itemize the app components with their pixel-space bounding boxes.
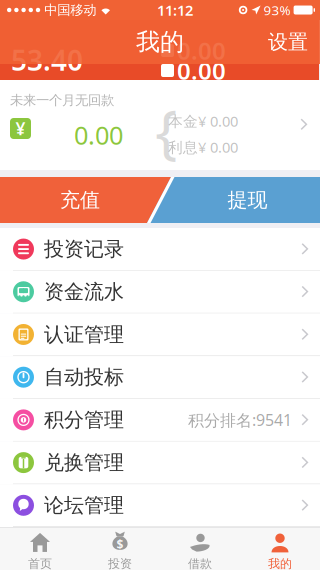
staticText: 93% [264, 1, 291, 19]
staticText: 53.40 [11, 41, 83, 79]
staticText: 中国移动 [44, 2, 96, 18]
button[interactable]: 首页 [0, 528, 80, 570]
button[interactable]: 资金流水 [0, 271, 320, 313]
staticText: 0.00 [177, 35, 226, 66]
button[interactable]: 充值 [0, 177, 320, 223]
button[interactable]: 投资记录 [0, 228, 320, 271]
staticText: 0.00 [177, 55, 226, 86]
staticText: 充值 [60, 188, 100, 212]
staticText: 首页 [28, 556, 52, 570]
button[interactable]: 投资 [80, 528, 160, 570]
button[interactable]: 认证管理 [0, 313, 320, 356]
staticText: { [155, 91, 177, 169]
staticText: 借款 [188, 556, 212, 570]
staticText: 未来一个月无回款 [10, 92, 114, 108]
staticText: 提现 [227, 188, 267, 212]
staticText: 我的 [268, 556, 292, 570]
staticText: 本金¥ 0.00 [168, 111, 238, 131]
staticText: 投资 [108, 556, 132, 570]
button[interactable]: 自动投标 [0, 356, 320, 399]
button[interactable]: 未来一个月无回款 [0, 80, 320, 170]
button[interactable]: 借款 [160, 528, 240, 570]
staticText: $ [116, 536, 123, 552]
staticText: 0.00 [74, 118, 123, 152]
staticText: 积分排名:9541 [188, 409, 292, 430]
button[interactable]: 兑换管理 [0, 441, 320, 484]
staticText: 设置 [268, 30, 308, 54]
staticText: 兑换管理 [44, 450, 124, 475]
staticText: 认证管理 [44, 322, 124, 347]
staticText: ¥ [15, 117, 25, 140]
staticText: 资金流水 [44, 279, 124, 304]
button[interactable]: 设置 [268, 24, 320, 60]
button[interactable]: 我的 [240, 528, 320, 570]
staticText: 我的 [136, 27, 184, 57]
staticText: 投资记录 [44, 237, 124, 261]
button[interactable]: 论坛管理 [0, 484, 320, 527]
staticText: 论坛管理 [44, 493, 124, 518]
staticText: 利息¥ 0.00 [168, 137, 238, 157]
staticText: 积分管理 [44, 408, 124, 432]
staticText: 11:12 [157, 0, 193, 20]
button[interactable]: 提现 [0, 177, 320, 223]
staticText: 自动投标 [44, 365, 124, 389]
button[interactable]: 积分管理 [0, 399, 320, 441]
